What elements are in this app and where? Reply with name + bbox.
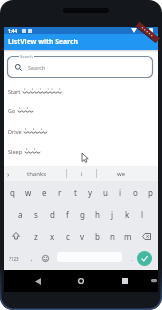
button[interactable]: thanks [13, 166, 61, 181]
staticText: ListView with Search [8, 37, 78, 46]
staticText: u [103, 187, 108, 198]
button[interactable]: Sleep [8, 146, 162, 156]
button[interactable]: i [67, 166, 96, 181]
staticText: Sleep [8, 148, 23, 155]
button[interactable]: m [120, 225, 135, 247]
button[interactable]: g [75, 203, 90, 225]
button[interactable]: h [90, 203, 105, 225]
staticText: z [34, 231, 38, 242]
button[interactable]: u [98, 181, 113, 203]
button[interactable]: y [83, 181, 98, 203]
staticText: ?123 [9, 256, 19, 262]
staticText: f [66, 209, 69, 220]
button[interactable] [151, 279, 157, 284]
staticText: r [58, 187, 62, 198]
staticText: o [133, 187, 138, 198]
button[interactable]: o [128, 181, 143, 203]
staticText: l [141, 209, 144, 220]
button[interactable]: we [97, 166, 145, 181]
button[interactable]: d [44, 203, 60, 225]
button[interactable]: l [135, 203, 150, 225]
staticText: e [42, 187, 47, 198]
button[interactable]: s [28, 203, 44, 225]
staticText: i [119, 187, 122, 198]
button[interactable]: . [126, 247, 138, 270]
button[interactable] [78, 278, 84, 284]
staticText: 1:44 [8, 28, 17, 34]
button[interactable]: Drive [8, 126, 162, 136]
staticText: s [34, 209, 38, 220]
staticText: › [7, 169, 10, 179]
staticText: i [81, 170, 83, 178]
button[interactable]: Start [8, 86, 162, 96]
staticText: d [50, 209, 55, 220]
staticText: b [95, 231, 100, 242]
button[interactable]: q [4, 181, 20, 203]
staticText: . [131, 255, 133, 263]
button[interactable]: v [75, 225, 90, 247]
staticText: we [117, 170, 126, 178]
button[interactable]: c [60, 225, 75, 247]
button[interactable]: j [105, 203, 120, 225]
staticText: k [125, 209, 130, 220]
staticText: Go [8, 107, 16, 114]
staticText: q [10, 187, 15, 198]
button[interactable]: i [113, 181, 128, 203]
button[interactable]: x [44, 225, 60, 247]
button[interactable] [4, 225, 28, 247]
button[interactable] [35, 278, 41, 285]
button[interactable]: Search [7, 56, 153, 78]
staticText: x [50, 231, 55, 242]
button[interactable]: t [68, 181, 83, 203]
button[interactable]: b [90, 225, 105, 247]
staticText: y [88, 187, 93, 198]
button[interactable]: p [143, 181, 158, 203]
staticText: Drive [8, 128, 22, 135]
staticText: t [74, 187, 77, 198]
button[interactable]: z [28, 225, 44, 247]
staticText: g [80, 209, 85, 220]
button[interactable] [137, 251, 152, 266]
staticText: j [111, 209, 114, 220]
staticText: Search [20, 54, 33, 59]
staticText: m [124, 231, 132, 242]
staticText: thanks [27, 170, 47, 178]
staticText: a [18, 209, 23, 220]
staticText: Start [8, 88, 21, 95]
staticText: Search [28, 64, 46, 71]
button[interactable]: e [36, 181, 52, 203]
staticText: w [25, 187, 32, 198]
button[interactable]: ?123 [4, 247, 24, 270]
button[interactable]: n [105, 225, 120, 247]
staticText: n [110, 231, 115, 242]
button[interactable]: a [12, 203, 28, 225]
staticText: p [148, 187, 153, 198]
button[interactable]: f [60, 203, 75, 225]
button[interactable]: , [26, 247, 38, 270]
staticText: c [66, 231, 70, 242]
button[interactable] [135, 225, 158, 247]
staticText: v [80, 231, 85, 242]
staticText: , [31, 255, 33, 263]
staticText: h [95, 209, 100, 220]
button[interactable]: r [52, 181, 68, 203]
button[interactable]: w [20, 181, 36, 203]
button[interactable]: k [120, 203, 135, 225]
button[interactable]: Go [8, 105, 162, 115]
